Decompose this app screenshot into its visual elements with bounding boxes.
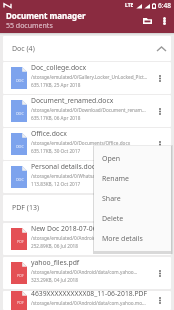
button[interactable]: Doc (4) — [3, 36, 171, 61]
staticText: 635.17KB, 06 Apr 2018 — [31, 115, 81, 121]
staticText: DOC — [16, 111, 24, 116]
staticText: DOC — [16, 144, 24, 149]
staticText: Delete — [102, 214, 124, 224]
staticText: Doc (4) — [12, 44, 35, 54]
staticText: /storage/emulated/0/Whatsapp/Personal de… — [31, 173, 137, 179]
button[interactable]: More options — [148, 257, 171, 289]
button[interactable]: More details — [94, 229, 171, 248]
button[interactable]: More options — [148, 291, 171, 310]
staticText: 252.89KB, 06 Jul 2018 — [31, 243, 78, 249]
button[interactable]: DOC — [3, 128, 171, 160]
button[interactable]: PDF — [3, 291, 171, 310]
staticText: 6:48 — [158, 1, 171, 10]
staticText: Rename — [102, 174, 130, 184]
staticText: PDF (13) — [12, 203, 40, 213]
staticText: DOC — [16, 177, 24, 182]
button[interactable]: DOC — [3, 95, 171, 127]
staticText: More details — [102, 234, 143, 244]
staticText: Share — [102, 194, 121, 204]
staticText: DOC — [16, 78, 24, 83]
button[interactable]: PDF — [3, 257, 171, 289]
button[interactable]: DOC — [3, 161, 171, 193]
staticText: 635.17KB, 25 Apr 2018 — [31, 82, 81, 88]
staticText: PDF — [17, 300, 24, 305]
button[interactable]: More options — [148, 128, 171, 160]
staticText: /storage/emulated/0/Android/data/com.yah… — [31, 300, 148, 306]
button[interactable]: Collapse section — [152, 36, 170, 61]
button[interactable]: More options — [148, 95, 171, 127]
button[interactable]: Share — [94, 189, 171, 209]
staticText: LTE — [125, 2, 134, 9]
staticText: Document_renamed.docx — [31, 96, 114, 105]
button[interactable]: Folder — [138, 12, 156, 32]
button[interactable]: More options — [148, 223, 171, 255]
button[interactable]: DOC — [3, 62, 171, 94]
staticText: 113.83KB, 12 Oct 2017 — [31, 181, 81, 187]
button[interactable]: More options — [156, 12, 172, 32]
staticText: /storage/emulated/0/Android/data/com.ado… — [31, 235, 138, 241]
staticText: /storage/emulated/0/Gallery.Locker_UnLoc… — [31, 74, 148, 80]
staticText: New Doc 2018-07-06_… — [31, 224, 105, 233]
staticText: Open — [102, 154, 121, 164]
staticText: /storage/emulated/0/Download/Document_re… — [31, 107, 148, 113]
staticText: 55 documents — [6, 21, 53, 31]
staticText: 4639XXXXXXXXXX08_11-06-2018.PDF — [31, 291, 148, 298]
staticText: 323.29KB, 04 Jul 2018 — [31, 277, 78, 283]
staticText: Personal details.docx — [31, 162, 99, 171]
staticText: /storage/emulated/0/Android/data/com.yah… — [31, 269, 138, 275]
button[interactable]: PDF — [3, 223, 171, 255]
staticText: Document manager — [6, 10, 86, 21]
staticText: PDF — [17, 273, 24, 278]
button[interactable]: Open — [94, 149, 171, 169]
button[interactable]: Rename — [94, 169, 171, 189]
staticText: Doc_college.docx — [31, 63, 87, 72]
staticText: PDF — [17, 239, 24, 244]
staticText: 635.17KB, 30 Oct 2017 — [31, 148, 81, 154]
staticText: yahoo_files.pdf — [31, 258, 80, 267]
staticText: Office.docx — [31, 129, 67, 138]
button[interactable]: More options — [148, 62, 171, 94]
button[interactable]: PDF (13) — [3, 195, 171, 221]
button[interactable]: Delete — [94, 209, 171, 229]
staticText: /storage/emulated/0/Documents/Office.doc… — [31, 140, 131, 146]
